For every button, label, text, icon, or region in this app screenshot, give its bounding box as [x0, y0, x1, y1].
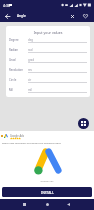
button[interactable]: Back	[1, 10, 13, 22]
staticText: Grad	[9, 58, 16, 62]
staticText: Google Ads	[10, 134, 24, 138]
staticText: Mil	[9, 88, 13, 92]
staticText: Input your values	[6, 30, 90, 35]
staticText: rev	[28, 68, 33, 72]
staticText: Radian	[9, 48, 19, 52]
staticText: 4:38	[3, 3, 10, 8]
staticText: Reach new customers and grow your busine…	[2, 141, 61, 144]
staticText: rad	[28, 48, 33, 52]
staticText: Revolution	[9, 68, 23, 72]
button[interactable]: Home	[42, 199, 53, 210]
button[interactable]: Calculator	[78, 118, 89, 129]
button[interactable]: Recents	[19, 199, 30, 210]
staticText: INSTALL	[41, 190, 54, 194]
button[interactable]: Close	[66, 10, 78, 22]
staticText: Google Ads	[0, 179, 94, 182]
staticText: mil	[28, 88, 33, 92]
staticText: cir	[28, 78, 32, 82]
button[interactable]: Back	[63, 199, 74, 210]
staticText: Degree	[9, 38, 19, 42]
staticText: Angle	[17, 14, 26, 18]
button[interactable]: Favorite	[79, 10, 91, 22]
staticText: Circle	[9, 78, 17, 82]
button[interactable]: INSTALL	[2, 187, 92, 197]
staticText: deg	[28, 38, 34, 42]
staticText: grad	[28, 58, 35, 62]
